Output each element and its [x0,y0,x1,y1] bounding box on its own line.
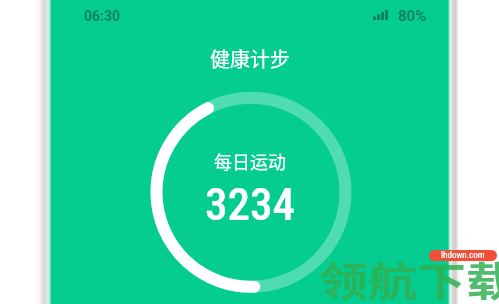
staticText: 领航下载 [319,249,499,304]
other: Signal strength [373,10,388,20]
staticText: 06:30 [84,8,121,24]
staticText: 每日运动 [214,148,286,174]
staticText: 健康计步 [210,44,290,73]
staticText: 80% [398,7,427,25]
staticText: 3234 [205,178,295,231]
staticText: lhdown.com [441,250,485,261]
